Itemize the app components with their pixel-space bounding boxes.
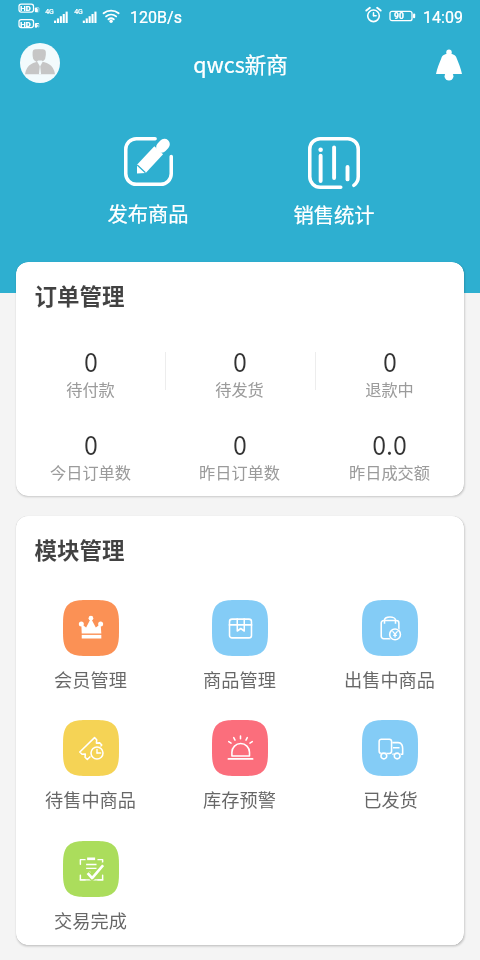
button[interactable]: 已发货 [315,720,464,830]
button[interactable]: 0 [16,343,165,413]
button[interactable]: 出售中商品 [315,600,464,710]
staticText: 2 [36,23,40,29]
staticText: 发布商品 [107,198,189,227]
staticText: 0 [84,343,98,379]
staticText: 1 [36,7,40,13]
staticText: 商品管理 [203,666,276,692]
staticText: 待付款 [66,377,115,400]
button[interactable]: 销售统计 [284,129,384,239]
staticText: 模块管理 [34,533,125,566]
button[interactable]: Profile [20,43,60,83]
staticText: 订单管理 [34,279,125,312]
button[interactable]: 0 [165,343,314,413]
staticText: 4G [74,8,83,16]
staticText: 120B/s [130,8,182,27]
staticText: 销售统计 [293,199,375,228]
button[interactable]: 0.0 [315,426,464,496]
staticText: 库存预警 [203,786,276,812]
staticText: 待售中商品 [45,786,136,812]
button[interactable]: Notifications [431,46,467,82]
button[interactable]: 0 [315,343,464,413]
button[interactable]: 待售中商品 [16,720,165,830]
staticText: 4G [45,8,54,16]
staticText: 昨日订单数 [199,460,280,483]
staticText: 出售中商品 [344,666,435,692]
staticText: 0 [233,426,247,462]
button[interactable]: 0 [16,426,165,496]
staticText: 待发货 [215,377,264,400]
staticText: 会员管理 [54,666,127,692]
button[interactable]: 0 [165,426,314,496]
staticText: 0 [233,343,247,379]
staticText: 交易完成 [54,907,127,933]
button[interactable]: 发布商品 [98,129,198,239]
button[interactable]: 会员管理 [16,600,165,710]
button[interactable]: 交易完成 [16,841,165,945]
staticText: qwcs新商 [193,48,288,79]
staticText: 今日订单数 [50,460,131,483]
staticText: 昨日成交额 [349,460,430,483]
staticText: HD [20,4,31,13]
staticText: 已发货 [363,786,418,812]
button[interactable]: 库存预警 [165,720,314,830]
staticText: 0 [84,426,98,462]
staticText: 14:09 [423,8,463,27]
staticText: 90 [394,11,404,21]
staticText: 退款中 [365,377,414,400]
staticText: 0.0 [372,426,407,462]
button[interactable]: 商品管理 [165,600,314,710]
staticText: 0 [383,343,397,379]
staticText: HD [20,20,31,29]
